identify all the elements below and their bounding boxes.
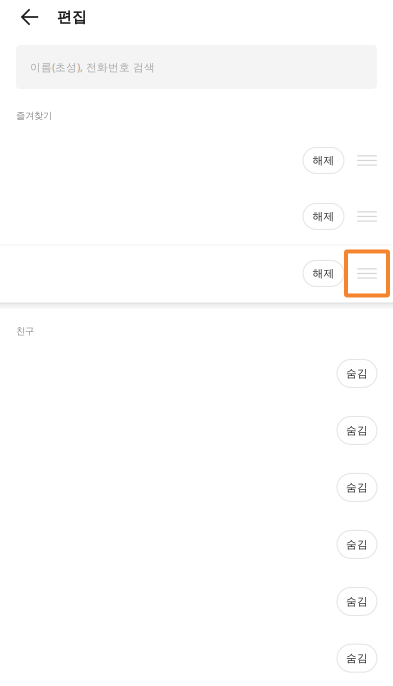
staticText: 숨김 bbox=[346, 481, 368, 494]
staticText: 숨김 bbox=[346, 424, 368, 437]
staticText: 친구 bbox=[16, 325, 34, 337]
button[interactable]: 숨김 bbox=[337, 644, 377, 672]
button[interactable]: 숨김 bbox=[337, 587, 377, 615]
staticText: 숨김 bbox=[346, 652, 368, 665]
button[interactable]: 해제 bbox=[303, 147, 344, 173]
staticText: 해제 bbox=[312, 267, 334, 280]
staticText: 편집 bbox=[57, 8, 87, 26]
button[interactable]: 숨김 bbox=[337, 359, 377, 387]
button[interactable]: 순서 변경 bbox=[344, 249, 390, 297]
staticText: 숨김 bbox=[346, 595, 368, 608]
staticText: 숨김 bbox=[346, 367, 368, 380]
staticText: 숨김 bbox=[346, 538, 368, 551]
staticText: 이름(초성), 전화번호 검색 bbox=[30, 60, 155, 74]
staticText: 해제 bbox=[312, 210, 334, 223]
button[interactable]: 해제 bbox=[303, 203, 344, 229]
button[interactable]: 순서 변경 bbox=[344, 136, 390, 184]
staticText: 해제 bbox=[312, 154, 334, 167]
button[interactable]: 숨김 bbox=[337, 416, 377, 444]
button[interactable]: 뒤로 bbox=[11, 0, 49, 34]
button[interactable]: 숨김 bbox=[337, 530, 377, 558]
button[interactable]: 숨김 bbox=[337, 473, 377, 501]
button[interactable]: 순서 변경 bbox=[344, 192, 390, 240]
staticText: 즐겨찾기 bbox=[16, 110, 52, 121]
button[interactable]: 해제 bbox=[303, 260, 344, 286]
